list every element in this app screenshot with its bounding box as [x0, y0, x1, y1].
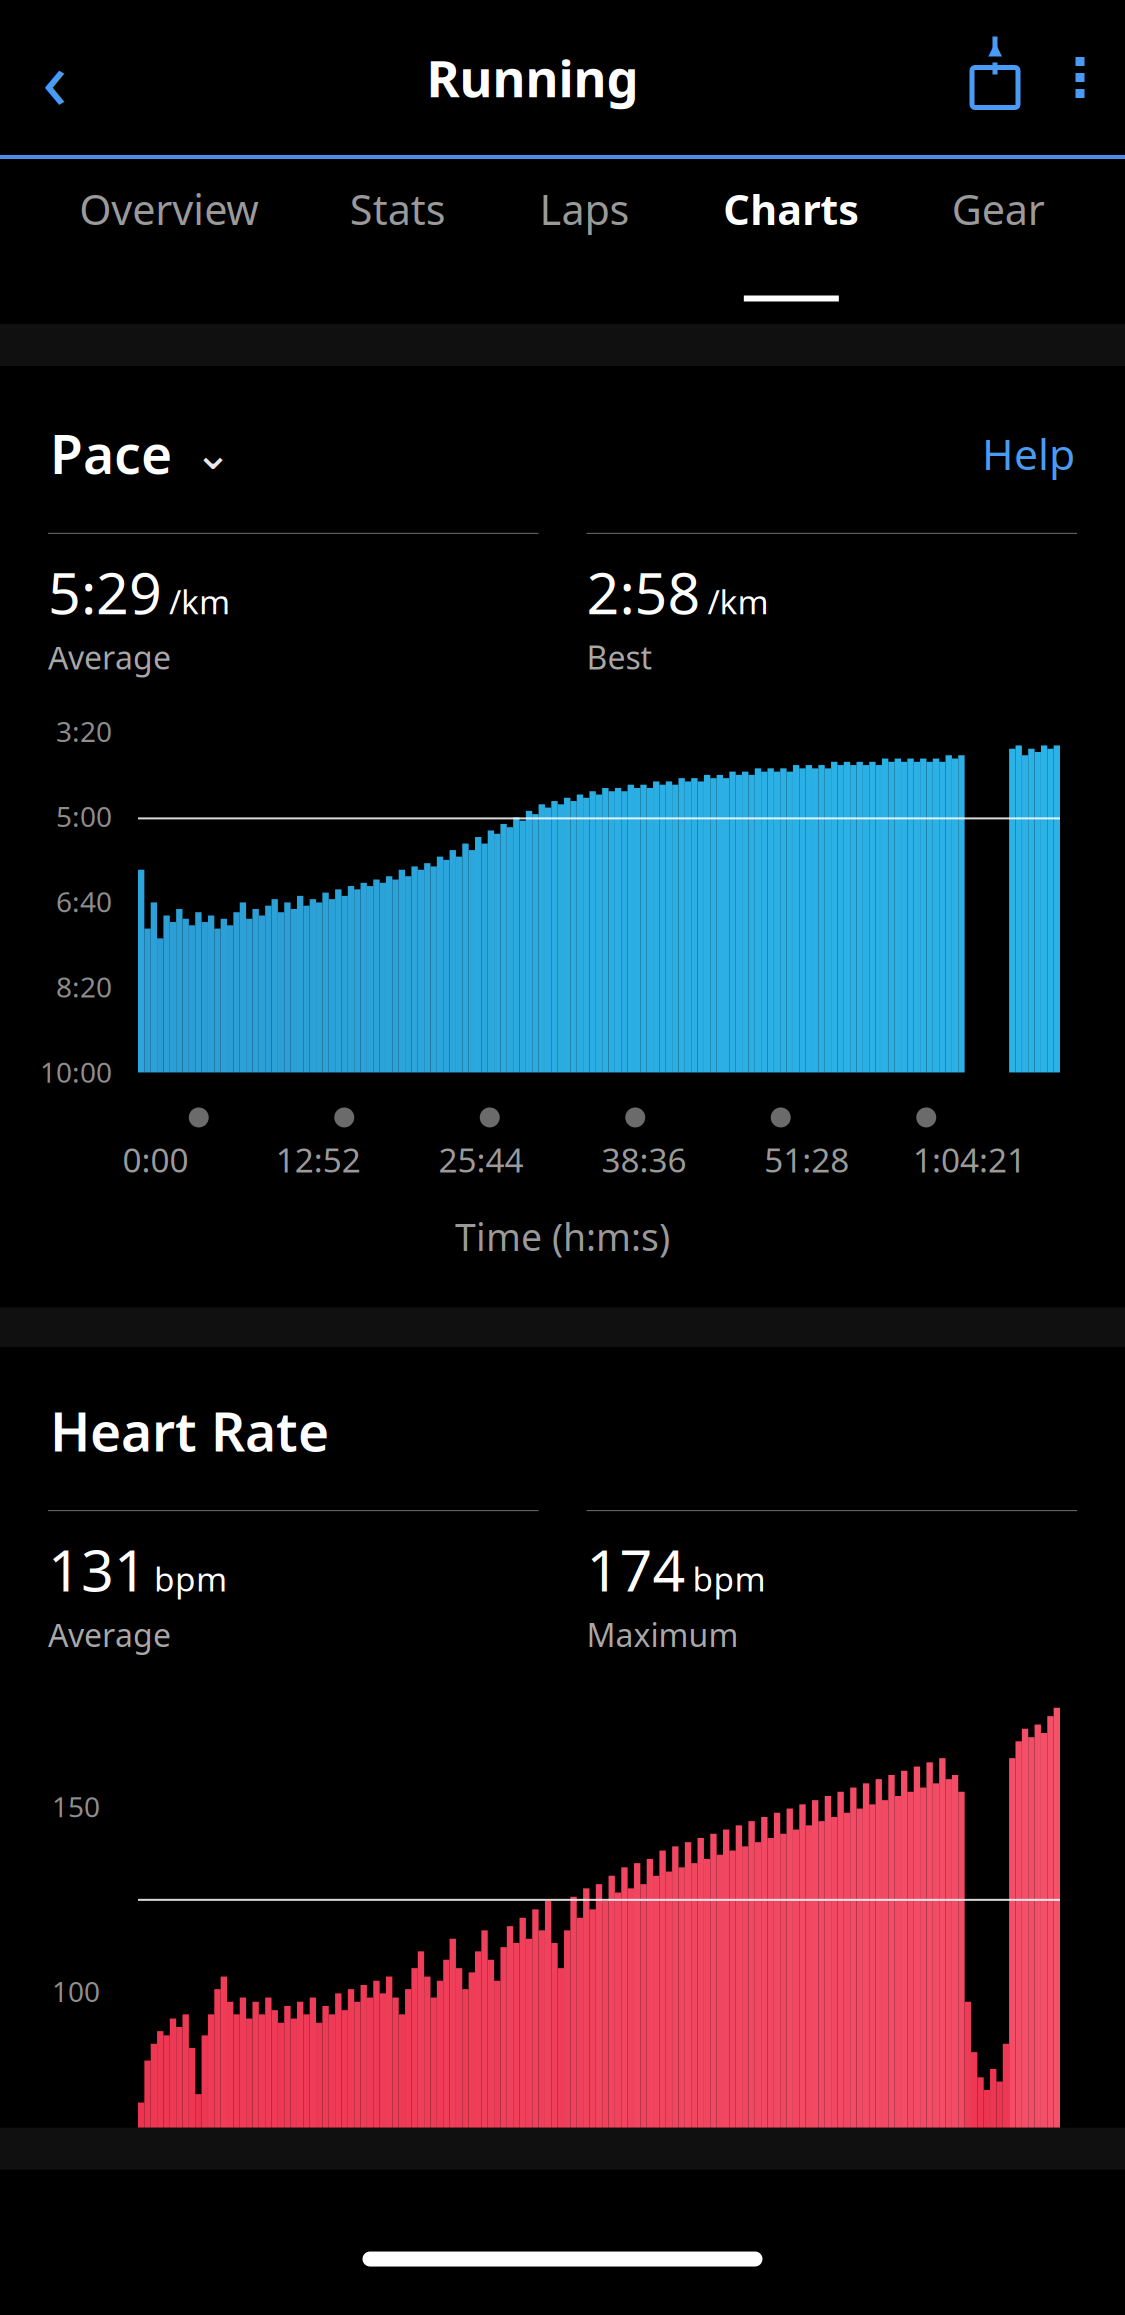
staticText: Average [48, 636, 171, 678]
staticText: 1:04:21 [913, 1137, 1026, 1182]
button[interactable]: Charts [711, 181, 871, 301]
button[interactable]: Help [982, 425, 1075, 482]
staticText: 3:20 [56, 712, 112, 750]
staticText: 6:40 [56, 883, 112, 920]
button[interactable]: Stats [338, 181, 458, 301]
staticText: 5:29 [48, 554, 162, 630]
staticText: Pace [50, 418, 172, 489]
button[interactable]: Pace [50, 418, 232, 489]
staticText: 12:52 [276, 1137, 361, 1182]
staticText: 38:36 [601, 1137, 686, 1182]
staticText: bpm [154, 1556, 227, 1601]
staticText: ⌄ [194, 428, 232, 479]
staticText: Charts [723, 181, 859, 236]
button[interactable]: Back [0, 22, 110, 132]
button[interactable]: More options [1035, 27, 1125, 127]
staticText: 131 [48, 1531, 147, 1607]
staticText: Running [426, 44, 638, 111]
staticText: Heart Rate [50, 1395, 329, 1466]
button[interactable]: Gear [939, 181, 1058, 301]
button[interactable]: Share [955, 36, 1035, 118]
staticText: ‹ [42, 23, 68, 132]
staticText: 51:28 [764, 1137, 849, 1182]
staticText: /km [169, 579, 230, 623]
staticText: 25:44 [439, 1137, 524, 1182]
staticText: 150 [52, 1788, 100, 1825]
staticText: /km [707, 579, 768, 623]
staticText: 174 [586, 1531, 685, 1607]
button[interactable]: Laps [525, 181, 644, 301]
staticText: Best [586, 636, 652, 678]
staticText: Average [48, 1613, 171, 1656]
staticText: Maximum [586, 1613, 738, 1656]
staticText: Stats [350, 181, 446, 236]
staticText: 8:20 [56, 968, 112, 1005]
button[interactable]: Overview [67, 181, 270, 301]
staticText: Overview [79, 181, 258, 236]
staticText: 10:00 [40, 1053, 112, 1090]
staticText: Gear [952, 181, 1045, 236]
staticText: ▲ [986, 36, 1003, 62]
staticText: Laps [539, 181, 629, 236]
staticText: 2:58 [586, 554, 700, 630]
staticText: 5:00 [56, 798, 112, 835]
staticText: Time (h:m:s) [455, 1212, 670, 1261]
staticText: 100 [52, 1973, 100, 2010]
staticText: Help [982, 425, 1075, 482]
staticText: bpm [692, 1556, 765, 1601]
staticText: 0:00 [122, 1137, 188, 1182]
